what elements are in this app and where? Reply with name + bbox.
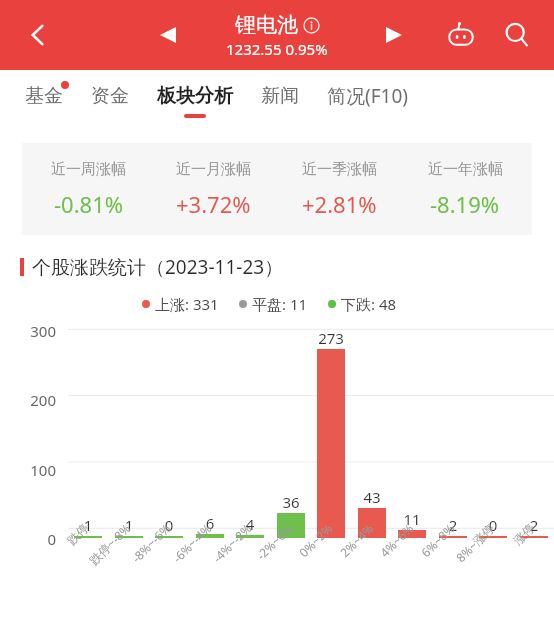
button[interactable]: 板块分析 <box>157 70 233 122</box>
staticText: 4 <box>230 514 270 534</box>
button[interactable]: 个股涨跌统计（2023-11-23） <box>20 254 554 280</box>
button[interactable]: 上涨: 331 <box>142 294 219 314</box>
button[interactable]: Info <box>303 17 320 34</box>
button[interactable] <box>479 536 507 538</box>
button[interactable]: 近一周涨幅 <box>22 143 532 235</box>
button[interactable] <box>196 534 224 538</box>
staticText: 板块分析 <box>157 84 233 108</box>
staticText: 涨停 <box>476 520 538 582</box>
staticText: +3.72% <box>176 189 251 219</box>
staticText: 上涨: 331 <box>155 294 219 314</box>
button[interactable]: Next <box>374 15 414 55</box>
button[interactable]: Search <box>496 14 538 56</box>
button[interactable] <box>439 536 467 538</box>
button[interactable] <box>236 535 264 538</box>
staticText: 2 <box>433 515 473 535</box>
staticText: 4%~6% <box>354 520 416 582</box>
button[interactable]: 平盘: 11 <box>239 294 308 314</box>
staticText: 1 <box>68 515 108 535</box>
staticText: 6 <box>190 513 230 533</box>
staticText: 300 <box>0 321 56 341</box>
staticText: 0 <box>473 515 513 535</box>
staticText: 11 <box>392 509 432 529</box>
staticText: -8.19% <box>430 189 500 219</box>
button[interactable] <box>520 536 548 538</box>
button[interactable]: Back <box>16 13 60 57</box>
staticText: 36 <box>271 492 311 512</box>
button[interactable]: Assistant <box>440 14 482 56</box>
staticText: 基金 <box>25 84 63 108</box>
button[interactable] <box>74 536 102 538</box>
staticText: 273 <box>311 328 351 348</box>
staticText: 0 <box>0 529 56 549</box>
staticText: 0 <box>149 515 189 535</box>
staticText: -0.81% <box>54 189 124 219</box>
staticText: 近一季涨幅 <box>302 160 377 179</box>
staticText: 下跌: 48 <box>341 294 397 314</box>
staticText: 近一年涨幅 <box>428 160 503 179</box>
staticText: -6%~-4% <box>152 520 214 582</box>
staticText: 个股涨跌统计（2023-11-23） <box>32 254 284 280</box>
staticText: 2%~4% <box>314 520 376 582</box>
staticText: 0%~2% <box>273 520 335 582</box>
button[interactable]: 新闻 <box>261 70 299 122</box>
staticText: 200 <box>0 390 56 410</box>
staticText: 100 <box>0 460 56 480</box>
staticText: 新闻 <box>261 84 299 108</box>
staticText: 跌停~-8% <box>71 520 133 582</box>
staticText: 锂电池 <box>235 12 298 38</box>
staticText: 平盘: 11 <box>252 294 308 314</box>
button[interactable]: 资金 <box>91 70 129 122</box>
button[interactable] <box>155 536 183 538</box>
button[interactable]: 下跌: 48 <box>328 294 397 314</box>
staticText: 简况(F10) <box>327 83 408 109</box>
staticText: 43 <box>352 487 392 507</box>
staticText: 6%~8% <box>395 520 457 582</box>
staticText: 1 <box>109 515 149 535</box>
staticText: 2 <box>514 515 554 535</box>
button[interactable] <box>358 508 386 538</box>
button[interactable]: Previous <box>148 15 188 55</box>
staticText: 8%~涨停 <box>435 520 497 582</box>
staticText: 近一周涨幅 <box>51 160 126 179</box>
button[interactable] <box>115 536 143 538</box>
button[interactable] <box>317 349 345 538</box>
staticText: -2%~0% <box>233 520 295 582</box>
staticText: 近一月涨幅 <box>176 160 251 179</box>
button[interactable] <box>398 530 426 538</box>
button[interactable]: 简况(F10) <box>327 70 408 122</box>
staticText: 资金 <box>91 84 129 108</box>
staticText: -4%~-2% <box>192 520 254 582</box>
staticText: +2.81% <box>302 189 377 219</box>
staticText: 跌停 <box>30 520 92 582</box>
staticText: -8%~-6% <box>111 520 173 582</box>
button[interactable]: 基金 <box>25 70 63 122</box>
staticText: 1232.55 0.95% <box>226 39 328 59</box>
button[interactable] <box>277 513 305 538</box>
